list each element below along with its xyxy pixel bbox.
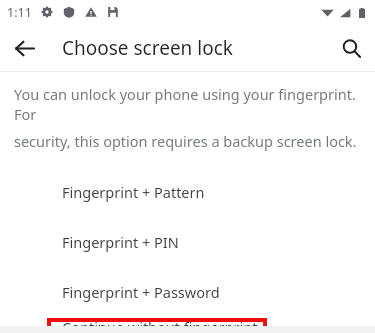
- button[interactable]: Search: [336, 33, 366, 63]
- staticText: You can unlock your phone using your fin…: [14, 84, 375, 124]
- staticText: Continue without fingerprint: [62, 317, 258, 333]
- button[interactable]: Fingerprint + Password: [0, 267, 375, 317]
- staticText: Fingerprint + PIN: [62, 232, 179, 252]
- staticText: Fingerprint + Pattern: [62, 182, 205, 202]
- staticText: 1:11: [7, 4, 32, 21]
- staticText: Fingerprint + Password: [62, 282, 220, 302]
- button[interactable]: Continue without fingerprint: [0, 317, 375, 333]
- staticText: security, this option requires a backup …: [14, 131, 357, 151]
- button[interactable]: Fingerprint + PIN: [0, 217, 375, 267]
- button[interactable]: Fingerprint + Pattern: [0, 167, 375, 217]
- button[interactable]: Back: [9, 33, 39, 63]
- staticText: Choose screen lock: [62, 35, 233, 61]
